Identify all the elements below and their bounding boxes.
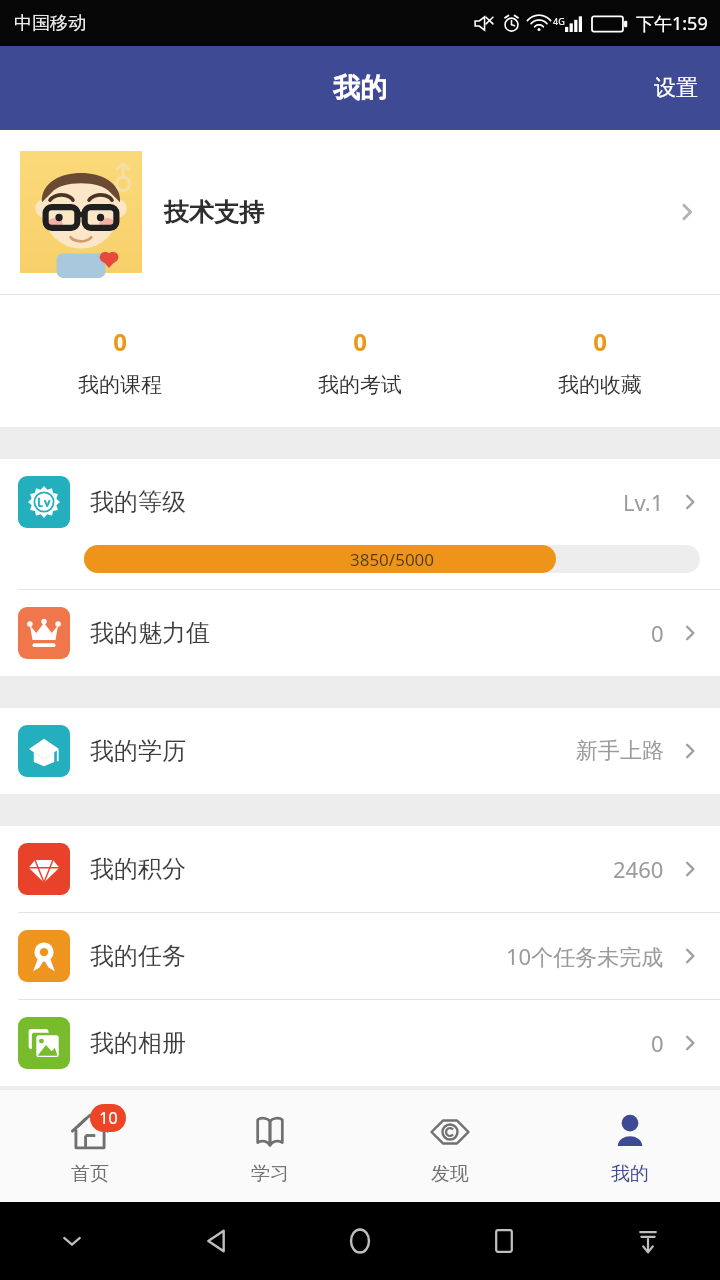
staticText: 我的课程 — [78, 372, 162, 398]
staticText: 4G — [553, 15, 565, 27]
staticText: 0 — [113, 325, 127, 358]
button[interactable]: Collapse — [0, 1202, 144, 1280]
button[interactable]: Home — [288, 1202, 432, 1280]
staticText: 0 — [593, 325, 607, 358]
staticText: 我的 — [611, 1162, 649, 1186]
button[interactable]: Home — [0, 1090, 180, 1202]
button[interactable]: Back — [144, 1202, 288, 1280]
button[interactable]: 0 — [480, 295, 720, 427]
button[interactable]: 我的任务 — [0, 913, 720, 999]
button[interactable]: 我的积分 — [0, 826, 720, 912]
staticText: 学习 — [251, 1162, 289, 1186]
button[interactable]: Study — [180, 1090, 360, 1202]
staticText: 我的收藏 — [558, 372, 642, 398]
staticText: 10个任务未完成 — [506, 941, 664, 971]
staticText: 我的学历 — [90, 736, 576, 766]
staticText: 我的任务 — [90, 941, 506, 971]
staticText: 0 — [651, 618, 664, 648]
staticText: 设置 — [654, 74, 698, 102]
staticText: 我的等级 — [90, 487, 623, 517]
button[interactable]: 设置 — [632, 58, 720, 118]
button[interactable]: 我的学历 — [0, 708, 720, 794]
button[interactable]: 我的魅力值 — [0, 590, 720, 676]
staticText: 下午1:59 — [636, 11, 708, 36]
button[interactable]: 技术支持 — [0, 130, 720, 294]
staticText: Lv.1 — [623, 487, 664, 517]
staticText: 我的魅力值 — [90, 618, 651, 648]
button[interactable]: Mine — [540, 1090, 720, 1202]
staticText: 中国移动 — [14, 12, 86, 35]
staticText: 0 — [651, 1028, 664, 1058]
staticText: 技术支持 — [164, 197, 674, 228]
staticText: 2460 — [613, 854, 664, 884]
button[interactable]: Notifications — [576, 1202, 720, 1280]
staticText: 我的相册 — [90, 1028, 651, 1058]
staticText: 我的 — [333, 71, 387, 105]
staticText: 发现 — [431, 1162, 469, 1186]
button[interactable]: 0 — [240, 295, 480, 427]
staticText: 0 — [353, 325, 367, 358]
button[interactable]: 0 — [0, 295, 240, 427]
staticText: 首页 — [71, 1162, 109, 1186]
staticText: 10 — [99, 1107, 118, 1129]
staticText: 我的考试 — [318, 372, 402, 398]
staticText: 3850/5000 — [156, 548, 628, 571]
button[interactable]: Recents — [432, 1202, 576, 1280]
button[interactable]: 我的相册 — [0, 1000, 720, 1086]
staticText: 新手上路 — [576, 737, 664, 765]
button[interactable]: 我的等级 — [0, 459, 720, 545]
button[interactable]: Discover — [360, 1090, 540, 1202]
staticText: 我的积分 — [90, 854, 613, 884]
